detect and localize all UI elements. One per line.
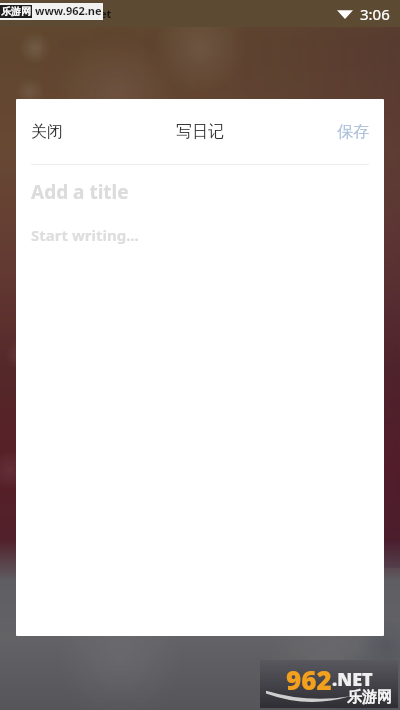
staticText: www.962.net [40, 6, 112, 21]
staticText: 乐游网 [1, 5, 31, 18]
staticText: 乐游网 [347, 688, 392, 707]
staticText: 关闭 [31, 122, 63, 142]
staticText: 保存 [337, 122, 369, 142]
staticText: .NET [332, 667, 373, 692]
button[interactable]: Add a title [16, 173, 384, 211]
staticText: www.962.net [35, 3, 103, 20]
staticText: Add a title [31, 179, 129, 205]
staticText: 3:06 [360, 4, 390, 24]
staticText: 乐游网 [5, 7, 35, 20]
button[interactable]: 保存 [328, 114, 378, 150]
staticText: 写日记 [176, 122, 224, 142]
staticText: Start writing... [31, 225, 139, 245]
staticText: 962 [286, 662, 332, 697]
button[interactable]: 关闭 [22, 114, 72, 150]
